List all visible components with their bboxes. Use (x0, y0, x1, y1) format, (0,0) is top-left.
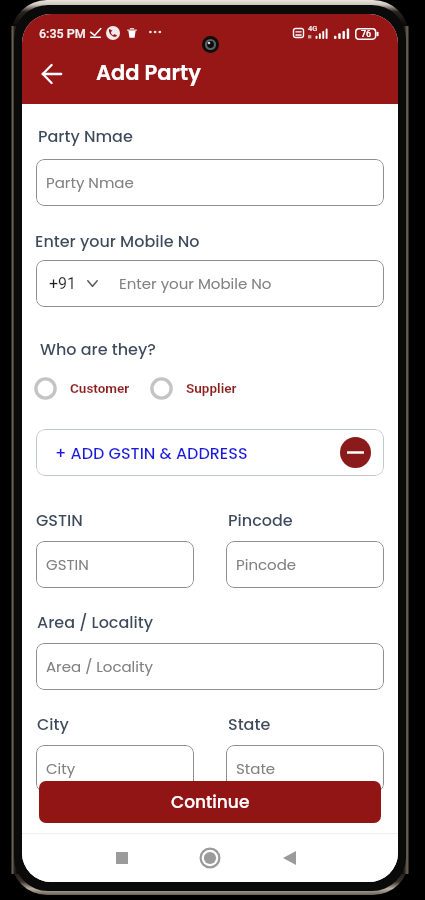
button[interactable]: GSTIN (36, 541, 194, 588)
staticText: Area / Locality (37, 611, 154, 633)
button[interactable]: Remove GSTIN and address (340, 437, 371, 468)
staticText: Who are they? (40, 338, 156, 360)
staticText: Supplier (186, 380, 237, 396)
staticText: Enter your Mobile No (35, 230, 200, 252)
button[interactable]: Pincode (226, 541, 384, 588)
staticText: Area / Locality (46, 656, 153, 677)
staticText: +91 (49, 274, 77, 293)
staticText: City (37, 713, 69, 735)
button[interactable]: Back (267, 834, 311, 882)
staticText: + ADD GSTIN & ADDRESS (55, 442, 248, 464)
button[interactable]: Area / Locality (36, 643, 384, 690)
button[interactable]: Supplier (149, 374, 237, 402)
staticText: Pincode (236, 554, 297, 575)
staticText: Enter your Mobile No (119, 273, 272, 294)
button[interactable]: Recent apps (100, 834, 144, 882)
button[interactable]: Home (188, 834, 232, 882)
button[interactable]: Customer (33, 374, 130, 402)
staticText: City (46, 758, 76, 779)
staticText: Continue (171, 790, 250, 814)
staticText: 76 (361, 29, 372, 40)
staticText: GSTIN (36, 509, 83, 531)
staticText: Party Nmae (38, 125, 133, 147)
staticText: Pincode (228, 509, 293, 531)
staticText: 4G (308, 24, 318, 33)
button[interactable]: +91 (36, 260, 384, 307)
staticText: Add Party (96, 58, 201, 87)
button[interactable]: Party Nmae (36, 159, 384, 206)
button[interactable]: Continue (39, 781, 381, 823)
staticText: State (236, 758, 276, 779)
staticText: 6:35 PM (39, 26, 86, 41)
button[interactable]: State (226, 745, 384, 792)
button[interactable]: Back (30, 52, 74, 96)
button[interactable]: City (36, 745, 194, 792)
staticText: Customer (70, 380, 130, 396)
staticText: Party Nmae (46, 172, 134, 193)
staticText: GSTIN (46, 554, 89, 575)
staticText: State (228, 713, 271, 735)
button[interactable]: + ADD GSTIN & ADDRESS (36, 429, 384, 476)
